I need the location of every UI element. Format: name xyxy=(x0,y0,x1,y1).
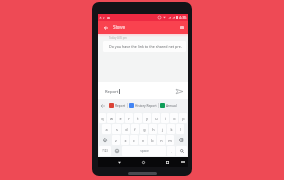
button[interactable]: Emoji xyxy=(112,146,121,156)
button[interactable]: space xyxy=(122,146,166,156)
staticText: b xyxy=(151,138,154,143)
staticText: j xyxy=(162,127,163,132)
button[interactable]: Change keyboard xyxy=(179,158,187,166)
button[interactable]: l xyxy=(176,124,184,134)
button[interactable]: a xyxy=(102,124,111,134)
button[interactable]: e xyxy=(116,113,124,123)
staticText: u xyxy=(155,116,158,121)
button[interactable]: x xyxy=(121,135,129,145)
button[interactable]: Shift xyxy=(99,135,111,145)
staticText: l xyxy=(180,127,181,132)
button[interactable]: Do you have the link to the shared net p… xyxy=(103,41,186,52)
staticText: q xyxy=(101,116,104,121)
staticText: Do you have the link to the shared net p… xyxy=(109,44,186,49)
button[interactable]: w xyxy=(107,113,115,123)
staticText: a xyxy=(105,127,108,132)
staticText: Report xyxy=(115,104,126,108)
button[interactable]: Search xyxy=(176,146,187,156)
staticText: i xyxy=(165,116,166,121)
staticText: space xyxy=(140,149,149,153)
button[interactable]: p xyxy=(179,113,187,123)
staticText: s xyxy=(116,127,118,132)
button[interactable]: Back xyxy=(115,158,123,166)
button[interactable]: s xyxy=(112,124,121,134)
staticText: Report xyxy=(105,89,119,95)
button[interactable]: Video call xyxy=(177,23,186,32)
staticText: ?123 xyxy=(102,149,108,153)
staticText: t xyxy=(137,116,139,121)
button[interactable]: u xyxy=(152,113,160,123)
staticText: v xyxy=(142,138,144,143)
button[interactable]: c xyxy=(130,135,138,145)
staticText: r xyxy=(128,116,130,121)
button[interactable]: g xyxy=(140,124,148,134)
button[interactable]: ?123 xyxy=(99,146,111,156)
staticText: Steve xyxy=(113,24,126,31)
button[interactable]: i xyxy=(161,113,169,123)
button[interactable]: o xyxy=(170,113,178,123)
staticText: . xyxy=(171,149,172,154)
staticText: h xyxy=(152,127,155,132)
button[interactable]: Annual xyxy=(159,103,178,108)
button[interactable]: Backspace xyxy=(175,135,187,145)
staticText: n xyxy=(160,138,163,143)
button[interactable]: Send xyxy=(175,87,184,96)
staticText: m xyxy=(168,138,172,143)
button[interactable]: Report xyxy=(108,103,127,108)
staticText: y xyxy=(146,116,148,121)
staticText: k xyxy=(170,127,173,132)
button[interactable]: f xyxy=(131,124,139,134)
button[interactable]: History Report xyxy=(128,103,158,108)
staticText: f xyxy=(134,127,136,132)
staticText: Today 4:35 pm xyxy=(109,36,127,40)
staticText: d xyxy=(125,127,128,132)
staticText: w xyxy=(110,116,113,121)
staticText: Annual xyxy=(166,104,177,108)
button[interactable]: m xyxy=(166,135,174,145)
staticText: z xyxy=(115,138,117,143)
button[interactable]: j xyxy=(158,124,166,134)
staticText: 4:35 xyxy=(179,15,187,20)
staticText: g xyxy=(143,127,146,132)
button[interactable]: t xyxy=(134,113,142,123)
staticText: p xyxy=(182,116,185,121)
button[interactable]: Back xyxy=(99,102,106,109)
button[interactable]: z xyxy=(112,135,120,145)
staticText: History Report xyxy=(135,104,157,108)
button[interactable]: Back xyxy=(101,23,110,32)
button[interactable]: Home xyxy=(139,158,147,166)
button[interactable]: b xyxy=(148,135,156,145)
staticText: x xyxy=(124,138,127,143)
button[interactable]: h xyxy=(149,124,157,134)
staticText: c xyxy=(133,138,135,143)
staticText: e xyxy=(119,116,122,121)
button[interactable]: d xyxy=(122,124,130,134)
button[interactable]: Recents xyxy=(163,158,171,166)
button[interactable]: n xyxy=(157,135,165,145)
button[interactable]: k xyxy=(167,124,175,134)
button[interactable]: y xyxy=(143,113,151,123)
button[interactable]: v xyxy=(139,135,147,145)
button[interactable]: q xyxy=(99,113,106,123)
staticText: o xyxy=(173,116,176,121)
button[interactable]: r xyxy=(125,113,133,123)
